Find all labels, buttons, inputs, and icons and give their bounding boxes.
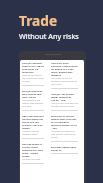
staticText: USD/JPY extends slide to the 155.00 area…: [22, 61, 44, 73]
staticText: EUR/USD to correct higher after ECB cuts…: [51, 114, 78, 129]
staticText: GBP/USD bounces off one-week low, still …: [22, 114, 44, 129]
staticText: Trade: [19, 11, 58, 30]
button[interactable]: EUR/USD to correct higher after ECB cuts…: [51, 114, 78, 145]
staticText: Without Any risks: [19, 31, 79, 41]
button[interactable]: USD/CAD Price Analysis: Strong move up a…: [51, 61, 78, 92]
staticText: EUR/GBP edges back closer to: [51, 145, 78, 151]
button[interactable]: USD/JPY set to find initial support at 1…: [51, 92, 78, 114]
button[interactable]: S&P 500 index to correct lower towards t…: [22, 142, 44, 167]
staticText: EUR/JPY bounces off 3-month low near 159…: [22, 89, 44, 98]
button[interactable]: USD/JPY extends slide to the 155.00 area…: [22, 61, 44, 89]
staticText: The S&P has a stop.: [22, 158, 41, 161]
staticText: S&P 500 index to correct lower towards t…: [22, 142, 44, 157]
staticText: The EUR/USD rebound in long and set stro…: [51, 130, 78, 139]
staticText: The GBP/USD has attracted steady.: [22, 130, 44, 136]
staticText: Japanese yen rises at the Nasdaq and tra…: [22, 74, 44, 83]
staticText: USD/JPY has a stop after the pair rose a…: [51, 102, 78, 108]
button[interactable]: EUR/JPY bounces off 3-month low near 159…: [22, 89, 44, 114]
staticText: USD/CAD Price Analysis: Strong move up a…: [51, 61, 78, 76]
staticText: The USD/CAD has the market in strong bel…: [51, 77, 78, 86]
button[interactable]: GBP/USD bounces off one-week low, still …: [22, 114, 44, 142]
staticText: USD/JPY set to find initial support at 1…: [51, 92, 78, 101]
staticText: The analysts of the register after menti…: [22, 99, 44, 108]
button[interactable]: EUR/GBP edges back closer to: [51, 145, 78, 157]
